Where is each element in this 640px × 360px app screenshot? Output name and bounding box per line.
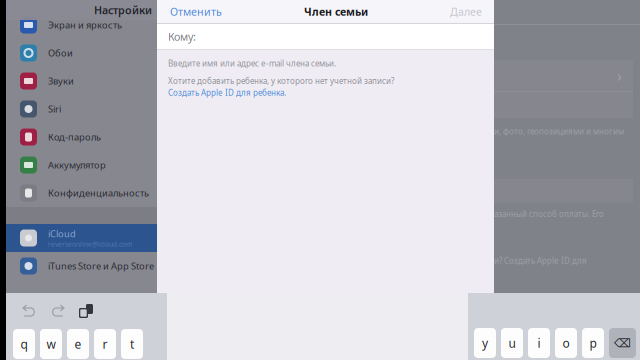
staticText: Код-пароль bbox=[48, 131, 101, 143]
button[interactable]: p bbox=[582, 328, 604, 358]
staticText: Аккумулятор bbox=[48, 159, 106, 171]
staticText: Кому: bbox=[168, 29, 196, 44]
staticText: азанный способ оплаты. Его bbox=[494, 209, 604, 219]
button[interactable]: Redo bbox=[50, 304, 66, 318]
staticText: iCloud bbox=[48, 227, 76, 240]
staticText: Далее bbox=[450, 4, 482, 19]
button[interactable]: o bbox=[555, 328, 577, 358]
staticText: Экран и яркость bbox=[48, 19, 122, 31]
staticText: q bbox=[20, 336, 27, 352]
button[interactable]: Конфиденциальность bbox=[6, 179, 157, 207]
button[interactable]: iCloud bbox=[6, 224, 157, 252]
button[interactable]: iTunes Store и App Store bbox=[6, 252, 157, 280]
staticText: Создать Apple ID для ребенка. bbox=[168, 87, 286, 98]
button[interactable]: Отменить bbox=[170, 4, 222, 19]
button[interactable]: Undo bbox=[21, 304, 37, 318]
button[interactable]: Обои bbox=[6, 39, 157, 67]
button[interactable]: q bbox=[13, 329, 35, 359]
staticText: o bbox=[562, 335, 569, 351]
staticText: Конфиденциальность bbox=[48, 187, 149, 199]
staticText: › bbox=[617, 65, 622, 86]
staticText: r bbox=[102, 336, 107, 352]
button[interactable]: Аккумулятор bbox=[6, 151, 157, 179]
staticText: и, фото, геопозициями и многим bbox=[494, 126, 624, 137]
staticText: iTunes Store и App Store bbox=[48, 260, 154, 272]
staticText: Член семьи bbox=[304, 4, 368, 19]
staticText: Хотите добавить ребенка, у которого нет … bbox=[168, 76, 394, 86]
button[interactable]: Экран и яркость bbox=[6, 11, 157, 39]
staticText: Звуки bbox=[48, 75, 74, 87]
staticText: Настройки bbox=[94, 3, 152, 17]
button[interactable]: ⌫ bbox=[609, 328, 636, 358]
button[interactable]: Создать Apple ID для ребенка. bbox=[168, 87, 286, 98]
staticText: y bbox=[482, 335, 488, 351]
button[interactable]: Звуки bbox=[6, 67, 157, 95]
button[interactable]: y bbox=[474, 328, 496, 358]
staticText: Siri bbox=[48, 103, 61, 115]
button[interactable]: t bbox=[121, 329, 143, 359]
staticText: Обои bbox=[48, 47, 73, 59]
staticText: ⌫ bbox=[614, 336, 631, 350]
staticText: i bbox=[537, 335, 540, 351]
button[interactable]: w bbox=[40, 329, 62, 359]
button[interactable]: r bbox=[94, 329, 116, 359]
staticText: и? Создать Apple ID для bbox=[494, 255, 587, 266]
staticText: Введите имя или адрес e-mail члена семьи… bbox=[168, 58, 336, 69]
button[interactable]: Код-пароль bbox=[6, 123, 157, 151]
button[interactable]: Siri bbox=[6, 95, 157, 123]
button[interactable]: Paste bbox=[79, 304, 93, 318]
staticText: Отменить bbox=[170, 4, 222, 19]
button[interactable]: Далее bbox=[450, 4, 482, 19]
staticText: reverseonline@icloud.com bbox=[48, 240, 132, 249]
button[interactable]: u bbox=[501, 328, 523, 358]
staticText: e bbox=[74, 336, 81, 352]
button[interactable]: i bbox=[528, 328, 550, 358]
staticText: p bbox=[589, 335, 596, 351]
staticText: u bbox=[508, 335, 515, 351]
button[interactable]: e bbox=[67, 329, 89, 359]
staticText: t bbox=[130, 336, 134, 352]
staticText: w bbox=[46, 336, 55, 352]
